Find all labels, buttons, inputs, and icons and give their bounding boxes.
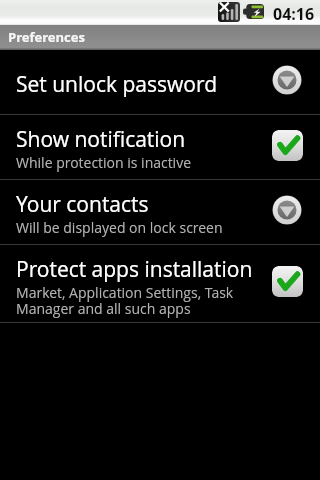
staticText: Show notification — [16, 125, 186, 154]
other: Battery charging — [243, 4, 264, 19]
button[interactable]: Show notification — [0, 115, 320, 179]
button[interactable]: Protect apps installation — [0, 245, 320, 322]
staticText: Preferences — [8, 28, 85, 46]
button[interactable]: Toggle checkbox — [272, 266, 303, 297]
button[interactable]: Expand — [272, 195, 302, 225]
staticText: While protection is inactive — [16, 153, 192, 172]
button[interactable]: Expand — [272, 65, 302, 95]
button[interactable]: Set unlock password — [0, 50, 320, 114]
staticText: 04:16 — [273, 3, 315, 25]
staticText: Protect apps installation — [16, 255, 253, 284]
staticText: Will be displayed on lock screen — [16, 218, 223, 237]
other: Signal strength — [218, 2, 240, 22]
staticText: Your contacts — [16, 190, 149, 219]
button[interactable]: Toggle checkbox — [272, 130, 303, 161]
staticText: Market, Application Settings, Task Manag… — [16, 283, 276, 318]
staticText: Set unlock password — [16, 70, 218, 99]
button[interactable]: Your contacts — [0, 180, 320, 244]
